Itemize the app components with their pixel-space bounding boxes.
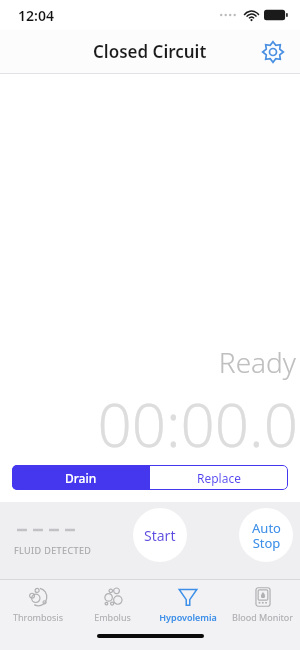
- button[interactable]: Replace: [150, 465, 288, 490]
- staticText: Blood Monitor: [232, 611, 293, 623]
- staticText: Auto Stop: [252, 519, 281, 552]
- staticText: Thrombosis: [13, 611, 63, 623]
- staticText: Drain: [65, 470, 97, 486]
- button[interactable]: Hypovolemia: [150, 580, 225, 628]
- staticText: 12:04: [18, 6, 54, 25]
- staticText: 00:00.0: [0, 383, 298, 465]
- staticText: Ready: [0, 343, 296, 381]
- staticText: Embolus: [94, 611, 131, 623]
- button[interactable]: Settings: [256, 35, 290, 69]
- button[interactable]: Auto Stop: [239, 508, 293, 562]
- staticText: Hypovolemia: [159, 611, 217, 623]
- button[interactable]: Blood Monitor: [225, 580, 300, 628]
- button[interactable]: Drain: [12, 465, 150, 490]
- button[interactable]: Start: [133, 508, 187, 562]
- staticText: Start: [144, 526, 176, 545]
- button[interactable]: Thrombosis: [0, 580, 75, 628]
- staticText: Replace: [197, 470, 241, 486]
- staticText: Closed Circuit: [93, 40, 207, 63]
- button[interactable]: Embolus: [75, 580, 150, 628]
- staticText: FLUID DETECTED: [14, 544, 92, 556]
